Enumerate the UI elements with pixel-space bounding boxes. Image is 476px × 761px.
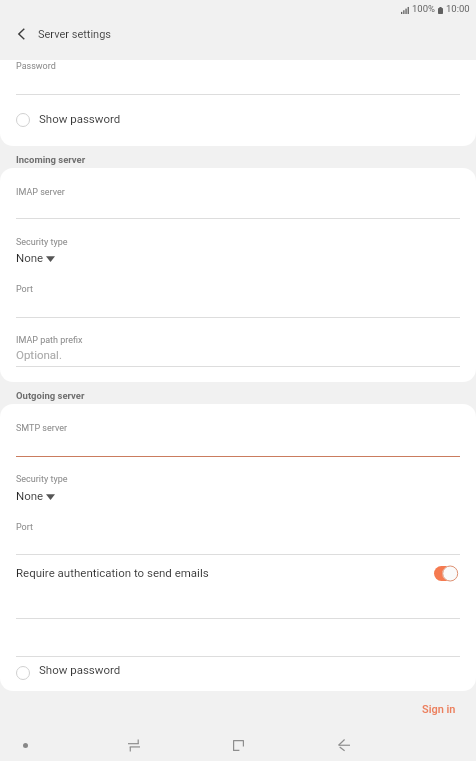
button[interactable]: Recents	[113, 727, 154, 761]
staticText: None	[16, 489, 44, 502]
button[interactable]: More options	[5, 727, 46, 761]
staticText: Server settings	[38, 28, 112, 41]
staticText: IMAP server	[16, 187, 65, 198]
staticText: Outgoing server	[16, 390, 85, 401]
staticText: Port	[16, 522, 33, 533]
staticText: Incoming server	[16, 154, 86, 165]
button[interactable]: Back	[323, 727, 364, 761]
button[interactable]: Show password	[0, 656, 476, 691]
button[interactable]: Navigate up	[6, 19, 36, 49]
button[interactable]: Port	[0, 508, 476, 554]
staticText: Security type	[16, 237, 68, 248]
button[interactable]: Port	[0, 270, 476, 317]
button[interactable]: Require authentication to send emails	[0, 554, 476, 618]
staticText: Password	[16, 61, 56, 72]
staticText: Show password	[39, 663, 121, 676]
staticText: Security type	[16, 474, 68, 485]
staticText: Sign in	[422, 703, 456, 716]
staticText: SMTP server	[16, 423, 68, 434]
staticText: Require authentication to send emails	[16, 566, 209, 579]
button[interactable]: Sign in	[402, 697, 476, 722]
staticText: Optional.	[16, 348, 62, 361]
staticText: 100%	[412, 3, 435, 14]
staticText: IMAP path prefix	[16, 335, 83, 346]
button[interactable]: SMTP server	[0, 404, 476, 456]
staticText: None	[16, 251, 44, 264]
staticText: Show password	[39, 112, 121, 125]
staticText: Port	[16, 284, 33, 295]
button[interactable]: Security type	[0, 456, 476, 508]
button[interactable]: IMAP path prefix	[0, 317, 476, 366]
button[interactable]: Show password	[0, 94, 476, 146]
button[interactable]: Home	[218, 727, 259, 761]
button[interactable]: Security type	[0, 218, 476, 270]
staticText: 10:00	[446, 3, 470, 14]
button[interactable]: IMAP server	[0, 168, 476, 218]
